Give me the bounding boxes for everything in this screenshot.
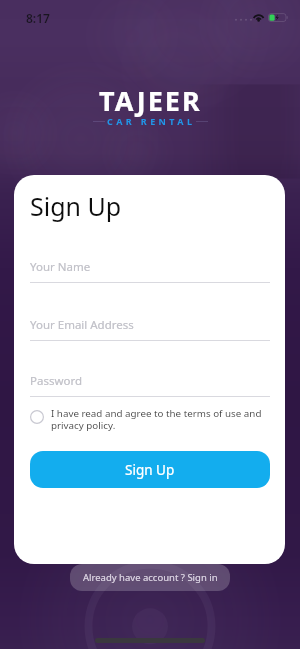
- staticText: Password: [30, 373, 83, 389]
- button[interactable]: Already have account ? Sign in: [70, 564, 230, 591]
- button[interactable]: Sign Up: [30, 451, 270, 488]
- staticText: 8:17: [26, 10, 50, 26]
- staticText: Sign Up: [30, 189, 122, 223]
- staticText: TAJEER: [99, 82, 202, 119]
- staticText: I have read and agree to the terms of us…: [51, 407, 270, 432]
- staticText: Your Email Address: [30, 317, 134, 333]
- staticText: Your Name: [30, 259, 91, 275]
- button[interactable]: I have read and agree to the terms of us…: [30, 407, 270, 432]
- staticText: Sign Up: [125, 461, 175, 479]
- staticText: Already have account ? Sign in: [83, 571, 218, 584]
- staticText: CAR RENTAL: [107, 115, 196, 127]
